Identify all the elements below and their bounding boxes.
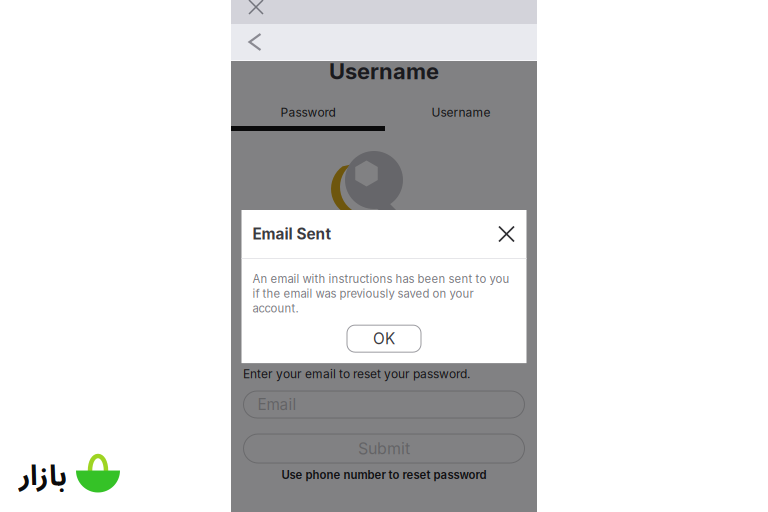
button[interactable]: Username xyxy=(385,105,537,131)
staticText: Username xyxy=(431,105,490,119)
staticText: Use phone number to reset password xyxy=(281,468,486,482)
button[interactable]: Password xyxy=(231,105,385,131)
staticText: Submit xyxy=(358,439,410,458)
button[interactable]: Close xyxy=(231,0,537,24)
button[interactable]: Submit xyxy=(243,434,524,463)
staticText: Email xyxy=(257,395,296,414)
staticText: Username xyxy=(329,58,439,85)
button[interactable]: Use phone number to reset password xyxy=(231,467,537,483)
staticText: Password xyxy=(280,105,335,119)
staticText: Enter your email to reset your password. xyxy=(243,367,470,381)
staticText: An email with instructions has been sent… xyxy=(252,272,509,315)
staticText: بازار xyxy=(18,447,66,506)
button[interactable]: Back xyxy=(231,24,537,60)
staticText: Email Sent xyxy=(252,225,331,243)
button[interactable]: OK xyxy=(347,325,421,352)
staticText: OK xyxy=(373,329,395,348)
button[interactable]: Close dialog xyxy=(493,221,519,247)
